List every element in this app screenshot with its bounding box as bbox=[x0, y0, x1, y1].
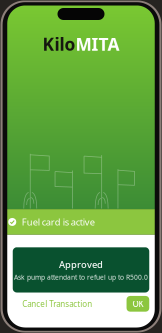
staticText: Kilo bbox=[42, 32, 75, 55]
staticText: Ask pump attendant to refuel up to R500.… bbox=[14, 273, 148, 282]
staticText: MITA bbox=[75, 32, 119, 55]
staticText: Cancel Transaction bbox=[22, 298, 92, 309]
staticText: OK bbox=[132, 298, 143, 309]
button[interactable]: Cancel Transaction bbox=[13, 293, 101, 314]
button[interactable]: OK bbox=[126, 296, 149, 312]
staticText: Fuel card is active bbox=[22, 216, 95, 228]
staticText: Approved bbox=[59, 258, 103, 271]
